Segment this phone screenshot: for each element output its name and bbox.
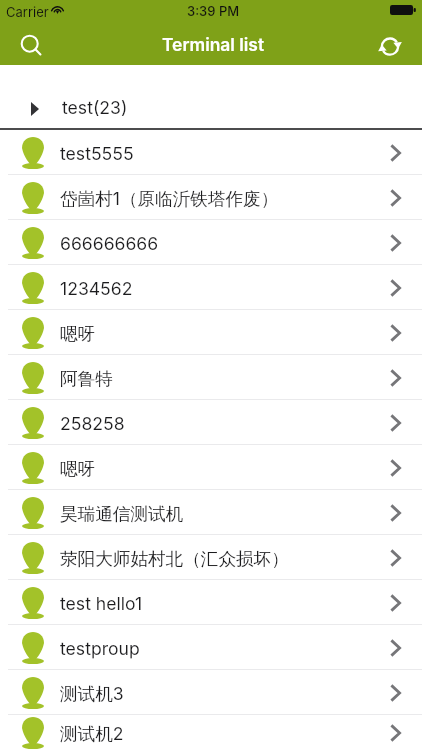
staticText: 258258 xyxy=(60,413,125,434)
button[interactable]: 嗯呀 xyxy=(0,310,422,355)
staticText: 666666666 xyxy=(60,233,159,254)
staticText: 1234562 xyxy=(60,278,133,299)
button[interactable]: 1234562 xyxy=(0,265,422,310)
button[interactable]: Search xyxy=(8,26,52,65)
button[interactable]: 昊瑞通信测试机 xyxy=(0,490,422,535)
button[interactable]: 阿鲁特 xyxy=(0,355,422,400)
staticText: 荥阳大师姑村北（汇众损坏） xyxy=(60,548,289,570)
button[interactable]: testproup xyxy=(0,625,422,670)
button[interactable]: test hello1 xyxy=(0,580,422,625)
staticText: 嗯呀 xyxy=(60,458,96,480)
staticText: Carrier xyxy=(6,4,49,20)
button[interactable]: test5555 xyxy=(0,130,422,175)
staticText: 岱崮村1（原临沂铁塔作废） xyxy=(60,188,279,210)
staticText: Terminal list xyxy=(162,34,265,55)
button[interactable]: test(23) xyxy=(0,65,422,130)
staticText: 测试机3 xyxy=(60,683,124,705)
staticText: 测试机2 xyxy=(60,723,124,745)
staticText: 3:39 PM xyxy=(187,3,240,19)
staticText: 阿鲁特 xyxy=(60,368,113,390)
button[interactable]: 258258 xyxy=(0,400,422,445)
staticText: testproup xyxy=(60,638,140,659)
staticText: 嗯呀 xyxy=(60,323,96,345)
button[interactable]: 嗯呀 xyxy=(0,445,422,490)
button[interactable]: Refresh xyxy=(368,26,412,65)
staticText: test hello1 xyxy=(60,593,143,614)
button[interactable]: 荥阳大师姑村北（汇众损坏） xyxy=(0,535,422,580)
button[interactable]: 测试机3 xyxy=(0,670,422,715)
button[interactable]: 666666666 xyxy=(0,220,422,265)
staticText: test5555 xyxy=(60,143,134,164)
staticText: 昊瑞通信测试机 xyxy=(60,503,184,525)
button[interactable]: 岱崮村1（原临沂铁塔作废） xyxy=(0,175,422,220)
button[interactable]: 测试机2 xyxy=(0,715,422,750)
staticText: test(23) xyxy=(62,97,128,118)
